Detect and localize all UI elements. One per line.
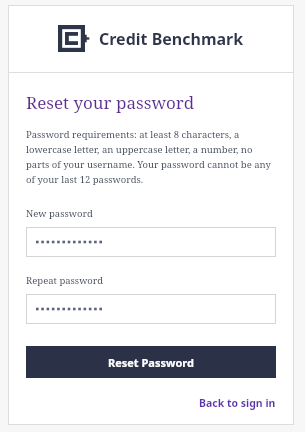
staticText: Back to sign in — [199, 396, 276, 410]
staticText: Password requirements: at least 8 charac… — [26, 128, 276, 186]
button[interactable]: Password input — [26, 294, 276, 324]
button[interactable]: Password input — [26, 227, 276, 257]
button[interactable]: Back to sign in — [199, 396, 276, 410]
staticText: Reset your password — [26, 91, 195, 114]
button[interactable]: Reset Password — [26, 346, 276, 378]
staticText: Repeat password — [26, 274, 104, 287]
staticText: New password — [26, 207, 93, 220]
staticText: Credit Benchmark — [99, 28, 244, 50]
staticText: Reset Password — [108, 355, 194, 370]
